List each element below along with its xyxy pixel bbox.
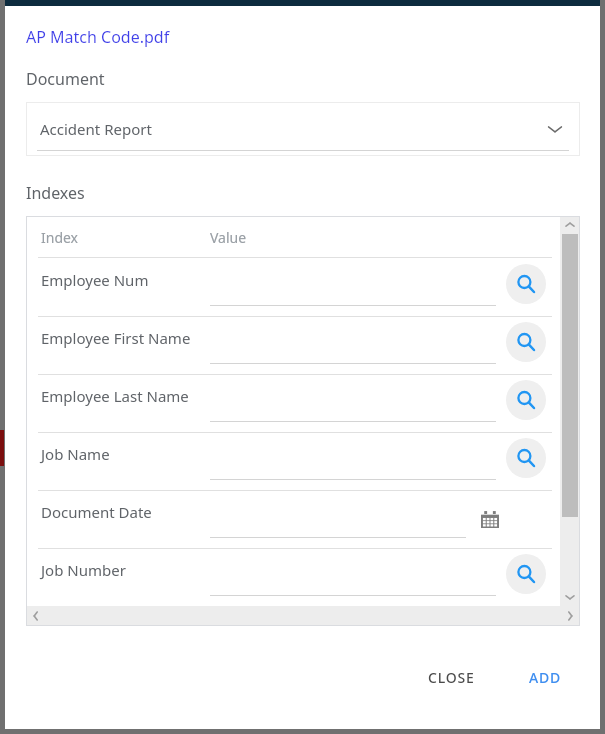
button[interactable]: Search (506, 438, 546, 478)
button[interactable]: AP Match Code.pdf (26, 26, 170, 48)
button[interactable]: Pick date (474, 503, 506, 535)
staticText: Index (41, 228, 79, 247)
button[interactable]: ADD (519, 660, 572, 695)
button[interactable]: Scroll right (560, 606, 580, 626)
button[interactable]: Accident Report (26, 102, 580, 156)
button[interactable]: Search (506, 554, 546, 594)
staticText: Job Number (41, 560, 126, 580)
staticText: Document (26, 68, 105, 90)
staticText: Employee Last Name (41, 386, 189, 406)
staticText: ADD (529, 668, 562, 687)
staticText: Indexes (26, 182, 85, 204)
staticText: Accident Report (40, 119, 152, 139)
staticText: AP Match Code.pdf (26, 26, 170, 48)
button[interactable]: Search (506, 380, 546, 420)
button[interactable]: Search (506, 322, 546, 362)
button[interactable]: Scroll up (560, 216, 580, 234)
staticText: Document Date (41, 502, 152, 522)
staticText: Value (210, 228, 247, 247)
button[interactable]: Scroll left (26, 606, 46, 626)
staticText: Employee First Name (41, 328, 191, 348)
staticText: CLOSE (428, 668, 475, 687)
button[interactable]: CLOSE (418, 660, 485, 695)
button[interactable]: Search (506, 264, 546, 304)
button[interactable]: Scroll down (560, 588, 580, 606)
staticText: Employee Num (41, 270, 149, 290)
staticText: Job Name (41, 444, 110, 464)
